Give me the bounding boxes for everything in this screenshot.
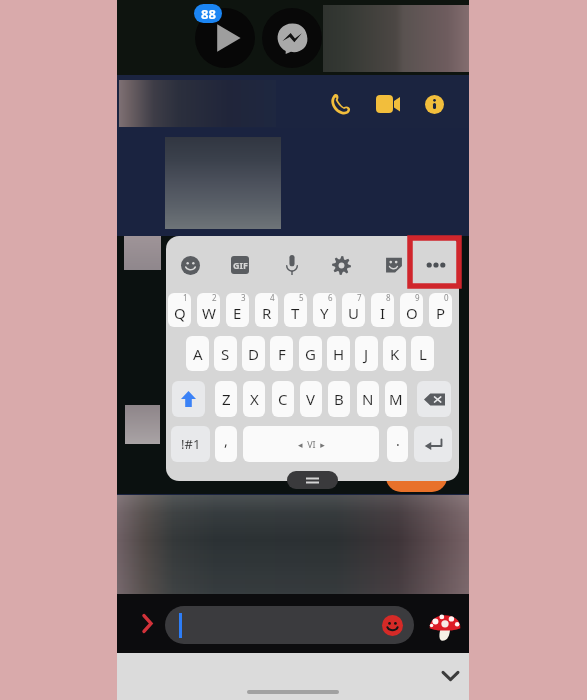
button[interactable]: Backspace [417, 381, 451, 417]
button[interactable]: Messenger app [262, 8, 322, 68]
button[interactable]: 0 [429, 293, 452, 327]
button[interactable]: Expand actions [129, 608, 166, 639]
button[interactable]: , [215, 426, 237, 462]
staticText: 5 [299, 293, 304, 303]
button[interactable]: C [272, 381, 294, 417]
staticText: J [364, 344, 369, 364]
button[interactable]: G [299, 336, 322, 371]
staticText: P [436, 303, 446, 323]
button[interactable]: . [387, 426, 408, 462]
button[interactable]: D [242, 336, 265, 371]
button[interactable]: Voice input [270, 242, 314, 288]
staticText: A [193, 344, 203, 364]
button[interactable]: F [270, 336, 293, 371]
button[interactable]: 7 [342, 293, 365, 327]
button[interactable]: J [355, 336, 378, 371]
button[interactable]: 3 [226, 293, 249, 327]
staticText: 7 [357, 293, 362, 303]
button[interactable]: Emoji [168, 242, 212, 288]
staticText: 88 [201, 5, 216, 23]
button[interactable]: 4 [255, 293, 278, 327]
staticText: M [389, 389, 403, 409]
button[interactable]: K [383, 336, 406, 371]
staticText: !#1 [181, 435, 201, 453]
button[interactable]: S [214, 336, 237, 371]
staticText: D [248, 344, 259, 364]
staticText: R [262, 303, 272, 323]
button[interactable]: 1 [168, 293, 191, 327]
button[interactable]: A [186, 336, 209, 371]
staticText: 1 [183, 293, 188, 303]
staticText: K [390, 344, 400, 364]
staticText: E [233, 303, 242, 323]
button[interactable]: L [411, 336, 434, 371]
button[interactable]: Hide keyboard [430, 658, 470, 694]
staticText: I [380, 303, 386, 323]
staticText: H [333, 344, 345, 364]
staticText: B [334, 389, 344, 409]
staticText: W [202, 303, 216, 323]
staticText: X [250, 389, 259, 409]
staticText: G [305, 344, 316, 364]
button[interactable]: 8 [371, 293, 394, 327]
button[interactable]: H [327, 336, 350, 371]
button[interactable]: Emoji [165, 606, 414, 644]
staticText: U [348, 303, 359, 323]
button[interactable]: GIF [218, 242, 262, 288]
staticText: 3 [241, 293, 246, 303]
button[interactable]: Video player app [195, 8, 255, 68]
button[interactable]: Video call [365, 82, 409, 126]
button[interactable]: Emoji [382, 615, 403, 636]
staticText: 9 [415, 293, 420, 303]
staticText: 0 [444, 293, 449, 303]
staticText: , [224, 431, 228, 450]
button[interactable]: Enter [414, 426, 452, 462]
button[interactable]: V [300, 381, 322, 417]
button[interactable]: Keyboard settings [319, 242, 363, 288]
staticText: GIF [233, 259, 248, 271]
button[interactable]: N [357, 381, 379, 417]
button[interactable]: Z [215, 381, 237, 417]
staticText: 6 [328, 293, 333, 303]
staticText: Q [174, 303, 186, 323]
staticText: N [362, 389, 374, 409]
staticText: ◂ VI ▸ [298, 438, 325, 450]
button[interactable]: Space [243, 426, 379, 462]
staticText: . [396, 431, 400, 450]
button[interactable]: 5 [284, 293, 307, 327]
staticText: 4 [270, 293, 275, 303]
button[interactable]: Stickers [428, 608, 462, 642]
button[interactable]: Symbols [171, 426, 210, 462]
button[interactable]: 2 [197, 293, 220, 327]
staticText: Y [320, 303, 329, 323]
button[interactable]: Stickers [372, 242, 416, 288]
staticText: F [278, 344, 286, 364]
staticText: T [291, 303, 300, 323]
button[interactable]: Resize keyboard [287, 471, 338, 489]
staticText: O [406, 303, 418, 323]
button[interactable]: B [328, 381, 350, 417]
button[interactable]: Call [317, 82, 361, 126]
button[interactable]: Shift [172, 381, 205, 417]
button[interactable]: M [385, 381, 407, 417]
staticText: Z [222, 389, 231, 409]
staticText: C [278, 389, 288, 409]
button[interactable]: X [243, 381, 265, 417]
staticText: L [419, 344, 427, 364]
staticText: S [221, 344, 230, 364]
staticText: 8 [386, 293, 391, 303]
staticText: V [306, 389, 316, 409]
button[interactable]: 6 [313, 293, 336, 327]
staticText: 2 [212, 293, 217, 303]
button[interactable]: 9 [400, 293, 423, 327]
button[interactable]: More options [414, 242, 458, 288]
button[interactable]: Conversation info [412, 82, 456, 126]
